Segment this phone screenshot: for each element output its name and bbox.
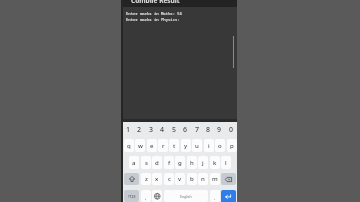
button[interactable]: . <box>210 190 220 202</box>
button[interactable]: e <box>147 139 157 152</box>
button[interactable]: q <box>124 139 134 152</box>
button[interactable]: s <box>141 156 151 169</box>
staticText: z <box>145 175 148 183</box>
staticText: 1 <box>126 125 131 135</box>
staticText: t <box>173 142 176 150</box>
button[interactable]: d <box>152 156 162 169</box>
button[interactable]: n <box>198 173 208 185</box>
staticText: f <box>168 159 171 167</box>
button[interactable]: 6 <box>180 124 191 136</box>
staticText: 9 <box>217 125 222 135</box>
staticText: p <box>230 142 234 150</box>
button[interactable]: o <box>215 139 225 152</box>
staticText: 5 <box>172 125 177 135</box>
staticText: h <box>190 159 194 167</box>
button[interactable]: r <box>158 139 168 152</box>
staticText: b <box>190 175 194 183</box>
button[interactable]: , <box>141 190 151 202</box>
button[interactable]: b <box>187 173 197 185</box>
staticText: l <box>225 159 227 167</box>
staticText: Compile Result <box>131 0 180 3</box>
button[interactable]: 9 <box>214 124 225 136</box>
button[interactable]: c <box>164 173 174 185</box>
button[interactable]: k <box>210 156 220 169</box>
button[interactable]: f <box>164 156 174 169</box>
staticText: v <box>178 175 182 183</box>
staticText: s <box>145 159 148 167</box>
staticText: q <box>127 142 131 150</box>
staticText: x <box>155 175 159 183</box>
staticText: g <box>178 159 182 167</box>
staticText: , <box>145 195 147 202</box>
button[interactable]: Compile Result <box>123 0 237 7</box>
button[interactable]: p <box>227 139 237 152</box>
button[interactable]: u <box>192 139 202 152</box>
staticText: n <box>201 175 205 183</box>
staticText: y <box>184 142 188 150</box>
staticText: 7 <box>195 125 200 135</box>
button[interactable]: y <box>181 139 191 152</box>
button[interactable]: w <box>135 139 145 152</box>
button[interactable]: 3 <box>146 124 157 136</box>
button[interactable]: l <box>221 156 231 169</box>
button[interactable]: 7 <box>192 124 203 136</box>
staticText: o <box>218 142 222 150</box>
button[interactable]: z <box>141 173 151 185</box>
button[interactable] <box>152 190 162 202</box>
staticText: . <box>214 195 216 202</box>
button[interactable]: m <box>210 173 220 185</box>
staticText: r <box>162 142 165 150</box>
button[interactable]: 5 <box>169 124 180 136</box>
staticText: u <box>195 142 199 150</box>
staticText: Enter marks in Maths: 56 <box>126 11 183 16</box>
button[interactable]: 8 <box>203 124 214 136</box>
staticText: w <box>138 142 143 150</box>
button[interactable] <box>221 173 236 185</box>
button[interactable]: x <box>152 173 162 185</box>
button[interactable]: English <box>164 190 208 202</box>
staticText: m <box>212 175 218 183</box>
staticText: 2 <box>137 125 142 135</box>
button[interactable] <box>221 190 236 202</box>
staticText: d <box>155 159 159 167</box>
button[interactable]: 1 <box>123 124 134 136</box>
staticText: e <box>150 142 154 150</box>
button[interactable] <box>124 173 139 185</box>
staticText: k <box>213 159 217 167</box>
button[interactable]: v <box>175 173 185 185</box>
staticText: j <box>202 159 204 167</box>
button[interactable]: h <box>187 156 197 169</box>
button[interactable]: i <box>204 139 214 152</box>
staticText: 8 <box>206 125 211 135</box>
button[interactable]: g <box>175 156 185 169</box>
button[interactable]: 4 <box>157 124 168 136</box>
staticText: 6 <box>183 125 188 135</box>
staticText: a <box>132 159 136 167</box>
staticText: Enter marks in Physics: <box>126 17 180 22</box>
staticText: English <box>180 194 192 199</box>
staticText: i <box>208 142 210 150</box>
staticText: 0 <box>229 125 234 135</box>
staticText: c <box>168 175 171 183</box>
staticText: 4 <box>160 125 165 135</box>
button[interactable]: 0 <box>226 124 237 136</box>
staticText: 3 <box>149 125 154 135</box>
button[interactable]: ?123 <box>124 190 139 202</box>
button[interactable]: 2 <box>134 124 145 136</box>
staticText: ?123 <box>128 194 136 199</box>
button[interactable]: t <box>169 139 179 152</box>
button[interactable]: j <box>198 156 208 169</box>
button[interactable]: a <box>129 156 139 169</box>
